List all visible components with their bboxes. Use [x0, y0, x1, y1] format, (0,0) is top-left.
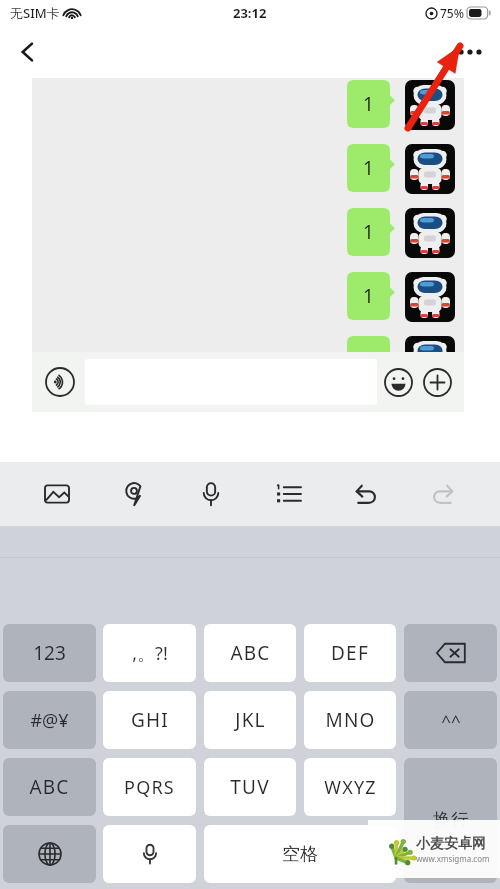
button[interactable]: 1	[347, 272, 395, 320]
button[interactable]: Avatar	[405, 272, 455, 322]
button[interactable]: More functions	[419, 364, 455, 400]
staticText: 换行	[433, 809, 469, 832]
button[interactable]: Voice input	[103, 825, 196, 883]
staticText: 75%	[440, 5, 464, 21]
staticText: 空格	[282, 843, 318, 866]
button[interactable]: Avatar	[405, 208, 455, 258]
staticText: TUV	[230, 774, 270, 800]
staticText: 123	[33, 640, 66, 666]
staticText: PQRS	[124, 775, 175, 800]
staticText: ,。?!	[132, 641, 168, 666]
button[interactable]: #@¥	[3, 691, 96, 749]
staticText: ABC	[230, 640, 271, 666]
button[interactable]: Avatar	[405, 336, 455, 352]
button[interactable]: Emoji	[380, 364, 416, 400]
button[interactable]: DEF	[304, 624, 396, 682]
staticText: www.xmsigma.com	[416, 853, 490, 864]
staticText: JKL	[235, 707, 266, 733]
staticText: 1	[363, 155, 374, 181]
button[interactable]: ABC	[204, 624, 296, 682]
button[interactable]: ABC	[3, 758, 96, 816]
staticText: 1	[363, 283, 374, 309]
button[interactable]: Voice	[185, 468, 237, 520]
button[interactable]: Location	[108, 468, 160, 520]
staticText: DEF	[331, 640, 369, 666]
button[interactable]: More options	[448, 30, 492, 74]
button[interactable]: 1	[347, 144, 395, 192]
staticText: #@¥	[30, 708, 69, 733]
button[interactable]: Redo	[417, 468, 469, 520]
button[interactable]: 换行	[404, 758, 497, 883]
button[interactable]: 1	[347, 336, 395, 352]
staticText: 无SIM卡	[10, 4, 60, 22]
button[interactable]: Back	[6, 30, 50, 74]
staticText: 23:12	[233, 4, 267, 22]
staticText: MNO	[325, 707, 376, 733]
button[interactable]: Undo	[340, 468, 392, 520]
button[interactable]: JKL	[204, 691, 296, 749]
button[interactable]: List	[263, 468, 315, 520]
staticText: ^^	[441, 709, 461, 732]
staticText: GHI	[131, 707, 169, 733]
staticText: WXYZ	[324, 775, 377, 800]
button[interactable]: ,。?!	[103, 624, 196, 682]
button[interactable]: Switch language	[3, 825, 96, 883]
button[interactable]: Voice input	[41, 363, 79, 401]
staticText: 1	[363, 219, 374, 245]
button[interactable]: 123	[3, 624, 96, 682]
button[interactable]: 1	[347, 208, 395, 256]
staticText: 1	[363, 91, 374, 117]
button[interactable]: GHI	[103, 691, 196, 749]
staticText: ABC	[29, 774, 70, 800]
button[interactable]: 1	[347, 80, 395, 128]
button[interactable]: Avatar	[405, 80, 455, 130]
button[interactable]: 空格	[204, 825, 396, 883]
button[interactable]: Backspace	[404, 624, 497, 682]
button[interactable]: PQRS	[103, 758, 196, 816]
button[interactable]: MNO	[304, 691, 396, 749]
button[interactable]: Avatar	[405, 144, 455, 194]
staticText: 小麦安卓网	[416, 835, 486, 853]
button[interactable]: ^^	[404, 691, 497, 749]
button[interactable]: TUV	[204, 758, 296, 816]
button[interactable]: WXYZ	[304, 758, 396, 816]
button[interactable]: Photos	[31, 468, 83, 520]
